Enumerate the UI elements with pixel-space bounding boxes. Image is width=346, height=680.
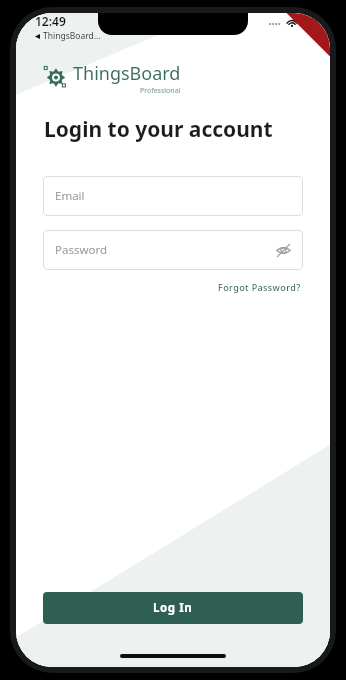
button[interactable]: Email [43,176,303,216]
staticText: Forgot Password? [218,281,301,293]
staticText: Login to your account [44,115,273,144]
button[interactable]: Show password [271,238,295,262]
button[interactable]: Forgot Password? [215,278,304,296]
staticText: Log In [153,600,193,616]
button[interactable]: Password [43,230,303,270]
staticText: Professional [140,86,181,93]
staticText: ThingsBoard… [43,30,101,42]
staticText: DEBUG [303,35,330,64]
staticText: ThingsBoard [73,61,181,86]
staticText: Password [55,242,108,258]
button[interactable]: Log In [43,592,303,624]
staticText: Email [55,188,85,204]
staticText: 12:49 [35,13,66,29]
